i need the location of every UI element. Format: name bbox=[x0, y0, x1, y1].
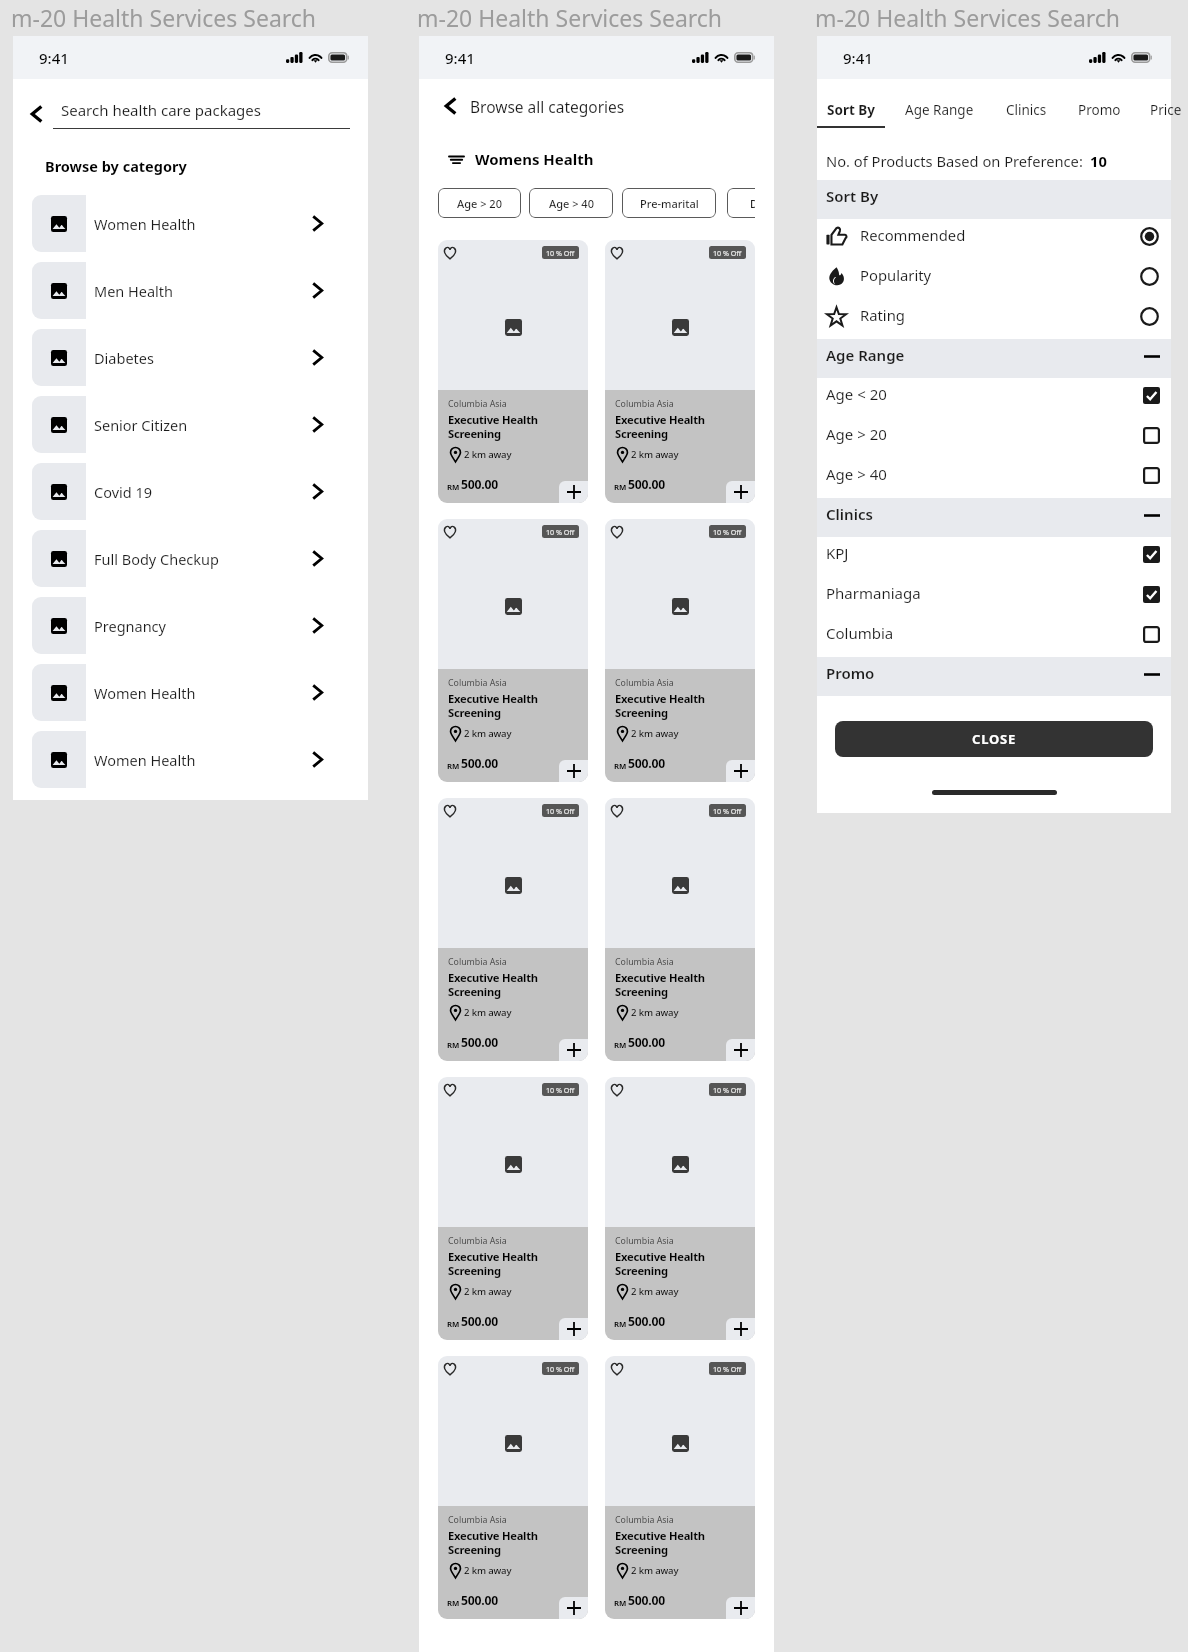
button[interactable]: Pre-marital bbox=[622, 188, 716, 218]
staticText: Columbia Asia bbox=[615, 956, 674, 968]
button[interactable]: 10 % Off bbox=[438, 519, 588, 782]
button[interactable]: Back bbox=[22, 100, 50, 128]
staticText: Pharmaniaga bbox=[826, 583, 1143, 603]
button[interactable]: 10 % Off bbox=[605, 240, 755, 503]
staticText: No. of Products Based on Preference: bbox=[826, 151, 1083, 171]
button[interactable]: Add bbox=[559, 760, 588, 782]
staticText: Columbia Asia bbox=[615, 677, 674, 689]
staticText: 10 % Off bbox=[713, 527, 742, 537]
staticText: Columbia Asia bbox=[615, 398, 674, 410]
button[interactable]: Promo bbox=[1066, 101, 1132, 128]
button[interactable]: 10 % Off bbox=[438, 240, 588, 503]
staticText: 2 km away bbox=[464, 1564, 512, 1577]
button[interactable]: Women Health bbox=[32, 195, 349, 252]
staticText: 10 % Off bbox=[713, 1364, 742, 1374]
button[interactable]: Diabetes bbox=[32, 329, 349, 386]
button[interactable]: Add bbox=[559, 481, 588, 503]
button[interactable]: Clinics bbox=[995, 101, 1057, 128]
button[interactable]: Collapse Promo bbox=[1140, 665, 1164, 689]
staticText: 9:41 bbox=[445, 48, 475, 68]
button[interactable]: Add bbox=[726, 1597, 755, 1619]
button[interactable]: Age > 20 bbox=[438, 188, 521, 218]
staticText: Executive Health Screening bbox=[448, 412, 538, 442]
button[interactable]: Collapse Age Range bbox=[1140, 347, 1164, 371]
staticText: RM bbox=[447, 1040, 460, 1051]
button[interactable]: Full Body Checkup bbox=[32, 530, 349, 587]
staticText: 500.00 bbox=[628, 476, 666, 493]
staticText: Executive Health Screening bbox=[615, 970, 705, 1000]
button[interactable]: Add bbox=[559, 1318, 588, 1340]
button[interactable]: 10 % Off bbox=[438, 1077, 588, 1340]
staticText: m-20 Health Services Search bbox=[417, 2, 723, 33]
button[interactable]: Senior Citizen bbox=[32, 396, 349, 453]
button[interactable]: Collapse Clinics bbox=[1140, 506, 1164, 530]
button[interactable]: Sort By bbox=[817, 101, 885, 128]
button[interactable]: Recommended bbox=[817, 219, 1171, 259]
button[interactable]: 10 % Off bbox=[605, 1077, 755, 1340]
button[interactable]: Add bbox=[726, 1318, 755, 1340]
staticText: 500.00 bbox=[461, 1592, 499, 1609]
button[interactable]: Rating bbox=[817, 299, 1171, 339]
staticText: Womens Health bbox=[475, 149, 594, 169]
staticText: RM bbox=[614, 1319, 627, 1330]
staticText: Full Body Checkup bbox=[94, 549, 219, 569]
staticText: 10 % Off bbox=[546, 1364, 575, 1374]
button[interactable]: 10 % Off bbox=[605, 519, 755, 782]
staticText: Executive Health Screening bbox=[615, 1249, 705, 1279]
staticText: RM bbox=[614, 1598, 627, 1609]
staticText: 10 % Off bbox=[546, 1085, 575, 1095]
button[interactable]: Add bbox=[726, 481, 755, 503]
staticText: 2 km away bbox=[464, 1006, 512, 1019]
button[interactable]: Popularity bbox=[817, 259, 1171, 299]
staticText: Men Health bbox=[94, 281, 174, 301]
staticText: RM bbox=[447, 1598, 460, 1609]
button[interactable]: Add bbox=[726, 1039, 755, 1061]
button[interactable]: 10 % Off bbox=[438, 798, 588, 1061]
staticText: KPJ bbox=[826, 543, 1143, 563]
button[interactable]: Pregnancy bbox=[32, 597, 349, 654]
staticText: m-20 Health Services Search bbox=[815, 2, 1121, 33]
staticText: RM bbox=[447, 482, 460, 493]
button[interactable]: Age > 20 bbox=[817, 418, 1171, 458]
button[interactable]: Dental bbox=[727, 188, 755, 218]
button[interactable]: Age Range bbox=[895, 101, 983, 128]
staticText: Age < 20 bbox=[826, 384, 1143, 404]
staticText: 10 % Off bbox=[546, 248, 575, 258]
button[interactable]: 10 % Off bbox=[438, 1356, 588, 1619]
button[interactable]: Men Health bbox=[32, 262, 349, 319]
staticText: m-20 Health Services Search bbox=[11, 2, 317, 33]
staticText: 2 km away bbox=[464, 1285, 512, 1298]
button[interactable]: Pharmaniaga bbox=[817, 577, 1171, 617]
button[interactable]: Browse all categories bbox=[436, 88, 625, 124]
button[interactable]: Women Health bbox=[32, 664, 349, 721]
staticText: 10 % Off bbox=[713, 806, 742, 816]
staticText: 500.00 bbox=[628, 1034, 666, 1051]
button[interactable]: Age < 20 bbox=[817, 378, 1171, 418]
button[interactable]: Price bbox=[1136, 101, 1188, 128]
button[interactable]: Age > 40 bbox=[817, 458, 1171, 498]
button[interactable]: KPJ bbox=[817, 537, 1171, 577]
button[interactable]: Women Health bbox=[32, 731, 349, 788]
button[interactable]: Add bbox=[726, 760, 755, 782]
button[interactable]: Columbia bbox=[817, 617, 1171, 657]
staticText: Executive Health Screening bbox=[448, 691, 538, 721]
button[interactable]: Add bbox=[559, 1597, 588, 1619]
staticText: RM bbox=[614, 1040, 627, 1051]
staticText: 10 bbox=[1090, 151, 1107, 171]
button[interactable]: Add bbox=[559, 1039, 588, 1061]
staticText: RM bbox=[447, 1319, 460, 1330]
button[interactable]: CLOSE bbox=[835, 721, 1153, 757]
button[interactable]: 10 % Off bbox=[605, 798, 755, 1061]
button[interactable]: 10 % Off bbox=[605, 1356, 755, 1619]
staticText: Executive Health Screening bbox=[448, 970, 538, 1000]
staticText: Columbia Asia bbox=[448, 1514, 507, 1526]
button[interactable]: Age > 40 bbox=[529, 188, 613, 218]
staticText: Clinics bbox=[826, 504, 873, 524]
staticText: Covid 19 bbox=[94, 482, 153, 502]
staticText: Executive Health Screening bbox=[615, 691, 705, 721]
button[interactable]: Covid 19 bbox=[32, 463, 349, 520]
staticText: Women Health bbox=[94, 214, 196, 234]
staticText: Age > 20 bbox=[826, 424, 1143, 444]
staticText: 9:41 bbox=[843, 48, 873, 68]
staticText: 500.00 bbox=[628, 755, 666, 772]
